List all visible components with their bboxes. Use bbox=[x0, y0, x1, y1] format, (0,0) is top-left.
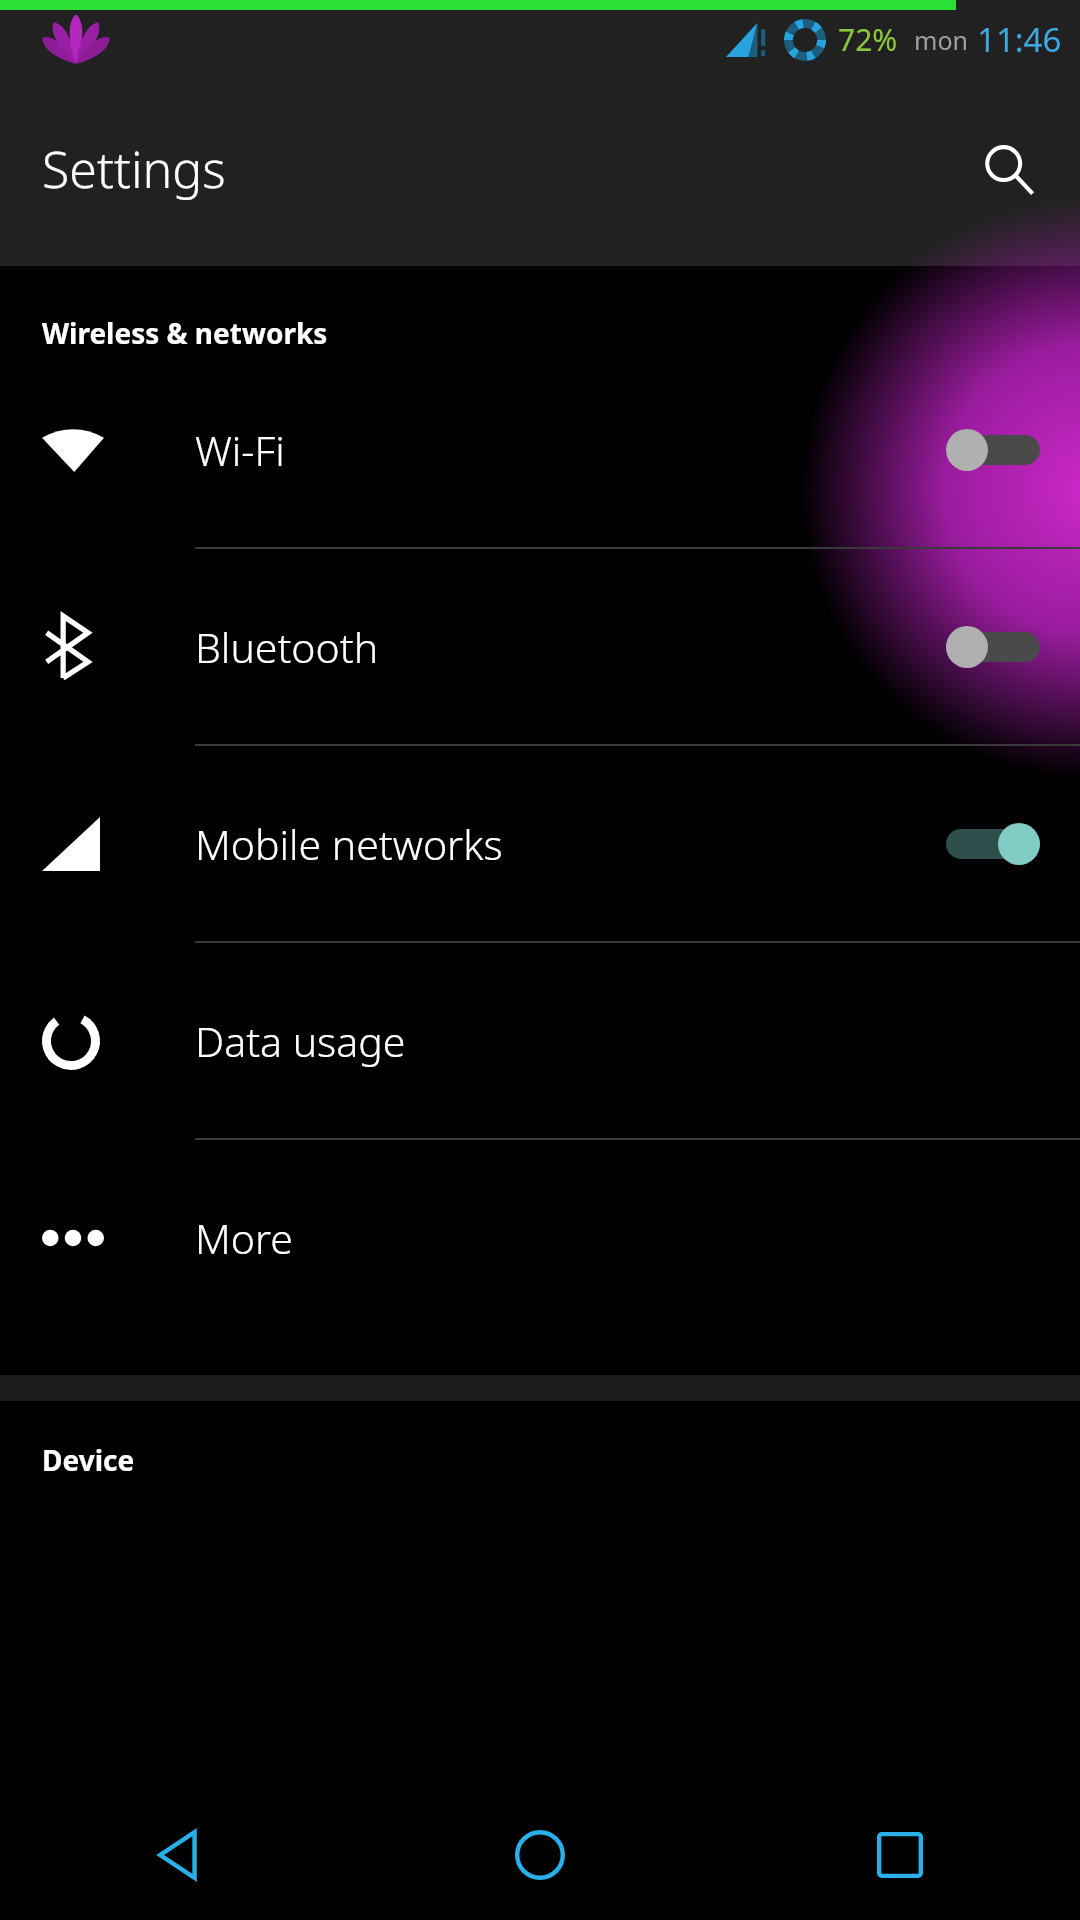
button[interactable]: Home bbox=[360, 1790, 720, 1920]
button[interactable]: Mobile networks bbox=[0, 746, 1080, 943]
button[interactable]: Wi-Fi bbox=[0, 352, 1080, 549]
button[interactable]: Data usage bbox=[0, 943, 1080, 1140]
button[interactable]: Toggle off bbox=[946, 626, 1040, 668]
button[interactable]: Back bbox=[0, 1790, 360, 1920]
button[interactable]: Bluetooth bbox=[0, 549, 1080, 746]
staticText: Device bbox=[42, 1441, 135, 1479]
staticText: Mobile networks bbox=[195, 816, 946, 872]
staticText: 11:46 bbox=[977, 17, 1062, 62]
button[interactable]: More bbox=[0, 1140, 1080, 1335]
button[interactable]: Recent apps bbox=[720, 1790, 1080, 1920]
staticText: Settings bbox=[42, 135, 226, 203]
staticText: Wi-Fi bbox=[195, 422, 946, 478]
staticText: 72% bbox=[838, 19, 898, 60]
staticText: Wireless & networks bbox=[42, 314, 328, 352]
staticText: More bbox=[195, 1210, 1040, 1266]
button[interactable]: Search bbox=[960, 121, 1056, 217]
button[interactable]: Toggle off bbox=[946, 429, 1040, 471]
staticText: mon bbox=[914, 23, 968, 57]
button[interactable]: Toggle on bbox=[946, 823, 1040, 865]
staticText: Data usage bbox=[195, 1013, 1040, 1069]
staticText: Bluetooth bbox=[195, 619, 946, 675]
